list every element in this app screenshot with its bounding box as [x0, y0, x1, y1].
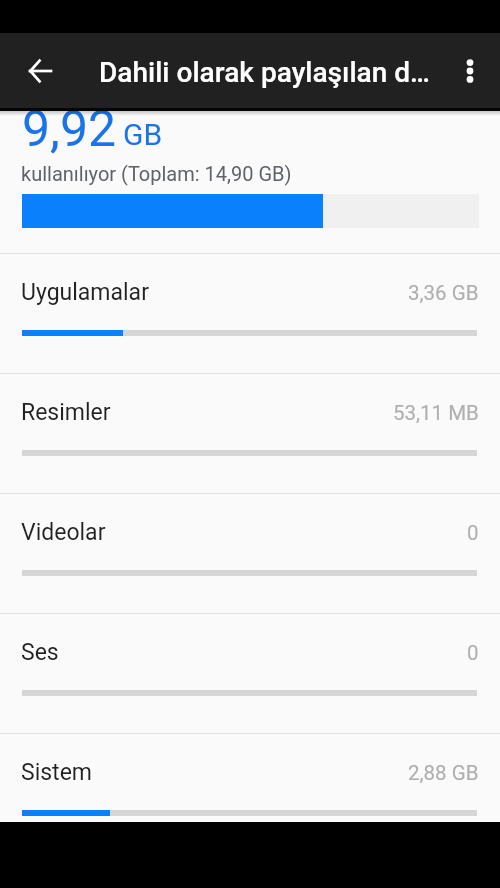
button[interactable]: Sistem: [0, 733, 500, 853]
staticText: Uygulamalar: [21, 279, 149, 306]
staticText: 3,36 GB: [408, 281, 479, 305]
button[interactable]: Videolar: [0, 493, 500, 613]
staticText: 2,88 GB: [408, 761, 479, 785]
staticText: Ses: [21, 639, 59, 666]
staticText: kullanılıyor (Toplam: 14,90 GB): [21, 162, 292, 185]
button[interactable]: Ses: [0, 613, 500, 733]
button[interactable]: More options: [446, 47, 494, 95]
button[interactable]: Uygulamalar: [0, 253, 500, 373]
staticText: 53,11 MB: [393, 401, 479, 425]
staticText: GB: [123, 117, 163, 152]
staticText: 0: [467, 521, 479, 545]
staticText: Dahili olarak paylaşılan d…: [99, 56, 446, 89]
staticText: Sistem: [21, 759, 93, 786]
button[interactable]: Resimler: [0, 373, 500, 493]
staticText: 9,92: [22, 100, 117, 159]
staticText: 0: [467, 641, 479, 665]
button[interactable]: Back: [18, 49, 62, 93]
staticText: Videolar: [21, 519, 106, 546]
staticText: Resimler: [21, 399, 111, 426]
